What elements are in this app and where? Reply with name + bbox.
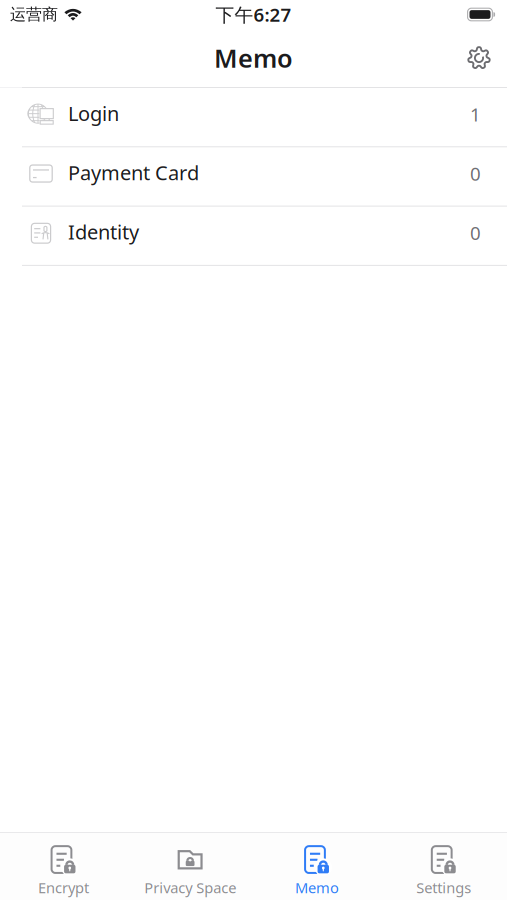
- button[interactable]: Identity: [0, 207, 507, 265]
- button[interactable]: Settings: [455, 36, 507, 80]
- button[interactable]: Payment Card: [0, 147, 507, 206]
- button[interactable]: Encrypt: [0, 833, 127, 900]
- staticText: Login: [68, 100, 119, 126]
- staticText: Encrypt: [38, 878, 89, 897]
- staticText: Settings: [416, 878, 471, 897]
- button[interactable]: Settings: [380, 833, 507, 900]
- button[interactable]: Login: [0, 88, 507, 146]
- staticText: 0: [470, 161, 481, 186]
- staticText: Memo: [214, 41, 293, 75]
- button[interactable]: Memo: [253, 833, 380, 900]
- staticText: Identity: [68, 218, 139, 245]
- staticText: Memo: [295, 878, 339, 897]
- staticText: Privacy Space: [144, 878, 236, 897]
- staticText: 1: [470, 102, 481, 127]
- staticText: 下午6:27: [215, 2, 291, 27]
- button[interactable]: Privacy Space: [127, 833, 254, 900]
- staticText: Payment Card: [68, 159, 199, 186]
- staticText: 0: [470, 220, 481, 245]
- staticText: 运营商: [10, 5, 58, 24]
